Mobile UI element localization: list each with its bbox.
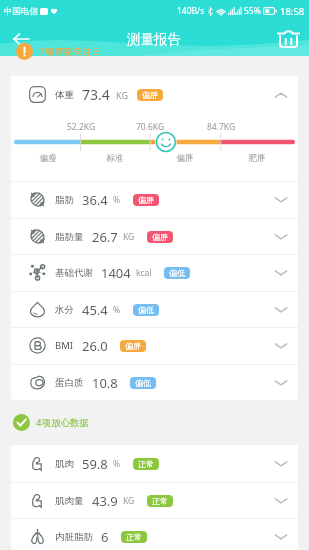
- button[interactable]: 肌肉: [11, 445, 298, 482]
- staticText: 52.2KG: [46, 121, 116, 133]
- staticText: 84.7KG: [186, 121, 256, 133]
- staticText: 140B/s: [177, 5, 205, 17]
- staticText: 36.4: [82, 191, 108, 209]
- staticText: 测量报告: [127, 31, 181, 48]
- staticText: 正常: [138, 459, 154, 469]
- staticText: 偏胖: [142, 90, 158, 100]
- staticText: 肌肉: [55, 458, 74, 470]
- staticText: 偏低: [138, 305, 154, 315]
- staticText: KG: [123, 231, 135, 243]
- staticText: 正常: [152, 496, 168, 506]
- staticText: 4项放心数据: [36, 416, 89, 429]
- staticText: 中国电信: [4, 6, 38, 17]
- staticText: 73.4: [82, 85, 110, 104]
- staticText: 59.8: [82, 455, 108, 473]
- staticText: 70.6KG: [115, 121, 185, 133]
- staticText: 偏低: [135, 378, 151, 388]
- staticText: 18:58: [280, 5, 305, 18]
- button[interactable]: Back: [0, 22, 42, 56]
- button[interactable]: 肌肉量: [11, 482, 298, 519]
- staticText: 肌肉量: [55, 495, 84, 507]
- staticText: 标准: [80, 153, 150, 164]
- staticText: 脂肪: [55, 194, 74, 206]
- button[interactable]: 蛋白质: [11, 364, 298, 400]
- staticText: 55%: [244, 5, 261, 17]
- staticText: 7项需要关注日: [39, 45, 102, 58]
- staticText: 内脏脂肪: [55, 531, 93, 543]
- staticText: 43.9: [92, 492, 118, 510]
- staticText: %: [113, 458, 121, 470]
- staticText: 偏瘦: [13, 153, 83, 164]
- staticText: 正常: [126, 532, 142, 542]
- button[interactable]: BMI: [11, 327, 298, 364]
- staticText: 偏胖: [125, 341, 141, 351]
- staticText: 偏低: [169, 268, 185, 278]
- staticText: 10.8: [92, 374, 118, 392]
- button[interactable]: 体重: [11, 76, 298, 113]
- button[interactable]: 脂肪量: [11, 218, 298, 255]
- staticText: 水分: [55, 304, 74, 316]
- button[interactable]: Delete: [267, 22, 309, 56]
- staticText: %: [113, 194, 121, 206]
- staticText: 蛋白质: [55, 377, 84, 389]
- button[interactable]: 基础代谢: [11, 254, 298, 291]
- staticText: 6: [101, 528, 109, 546]
- staticText: KG: [123, 495, 135, 507]
- staticText: 偏胖: [152, 232, 168, 242]
- staticText: 基础代谢: [55, 267, 93, 279]
- staticText: KG: [116, 89, 128, 101]
- staticText: 体重: [55, 89, 74, 101]
- staticText: 偏胖: [150, 153, 220, 164]
- staticText: BMI: [55, 339, 74, 352]
- button[interactable]: 脂肪: [11, 181, 298, 218]
- staticText: 脂肪量: [55, 231, 84, 243]
- staticText: 偏胖: [138, 195, 154, 205]
- staticText: 26.0: [82, 337, 108, 355]
- staticText: 45.4: [82, 301, 108, 319]
- staticText: 肥胖: [222, 153, 292, 164]
- staticText: 26.7: [92, 228, 118, 246]
- button[interactable]: 内脏脂肪: [11, 518, 298, 550]
- staticText: %: [113, 304, 121, 316]
- button[interactable]: 水分: [11, 291, 298, 328]
- staticText: 1404: [101, 264, 131, 282]
- staticText: kcal: [136, 267, 152, 279]
